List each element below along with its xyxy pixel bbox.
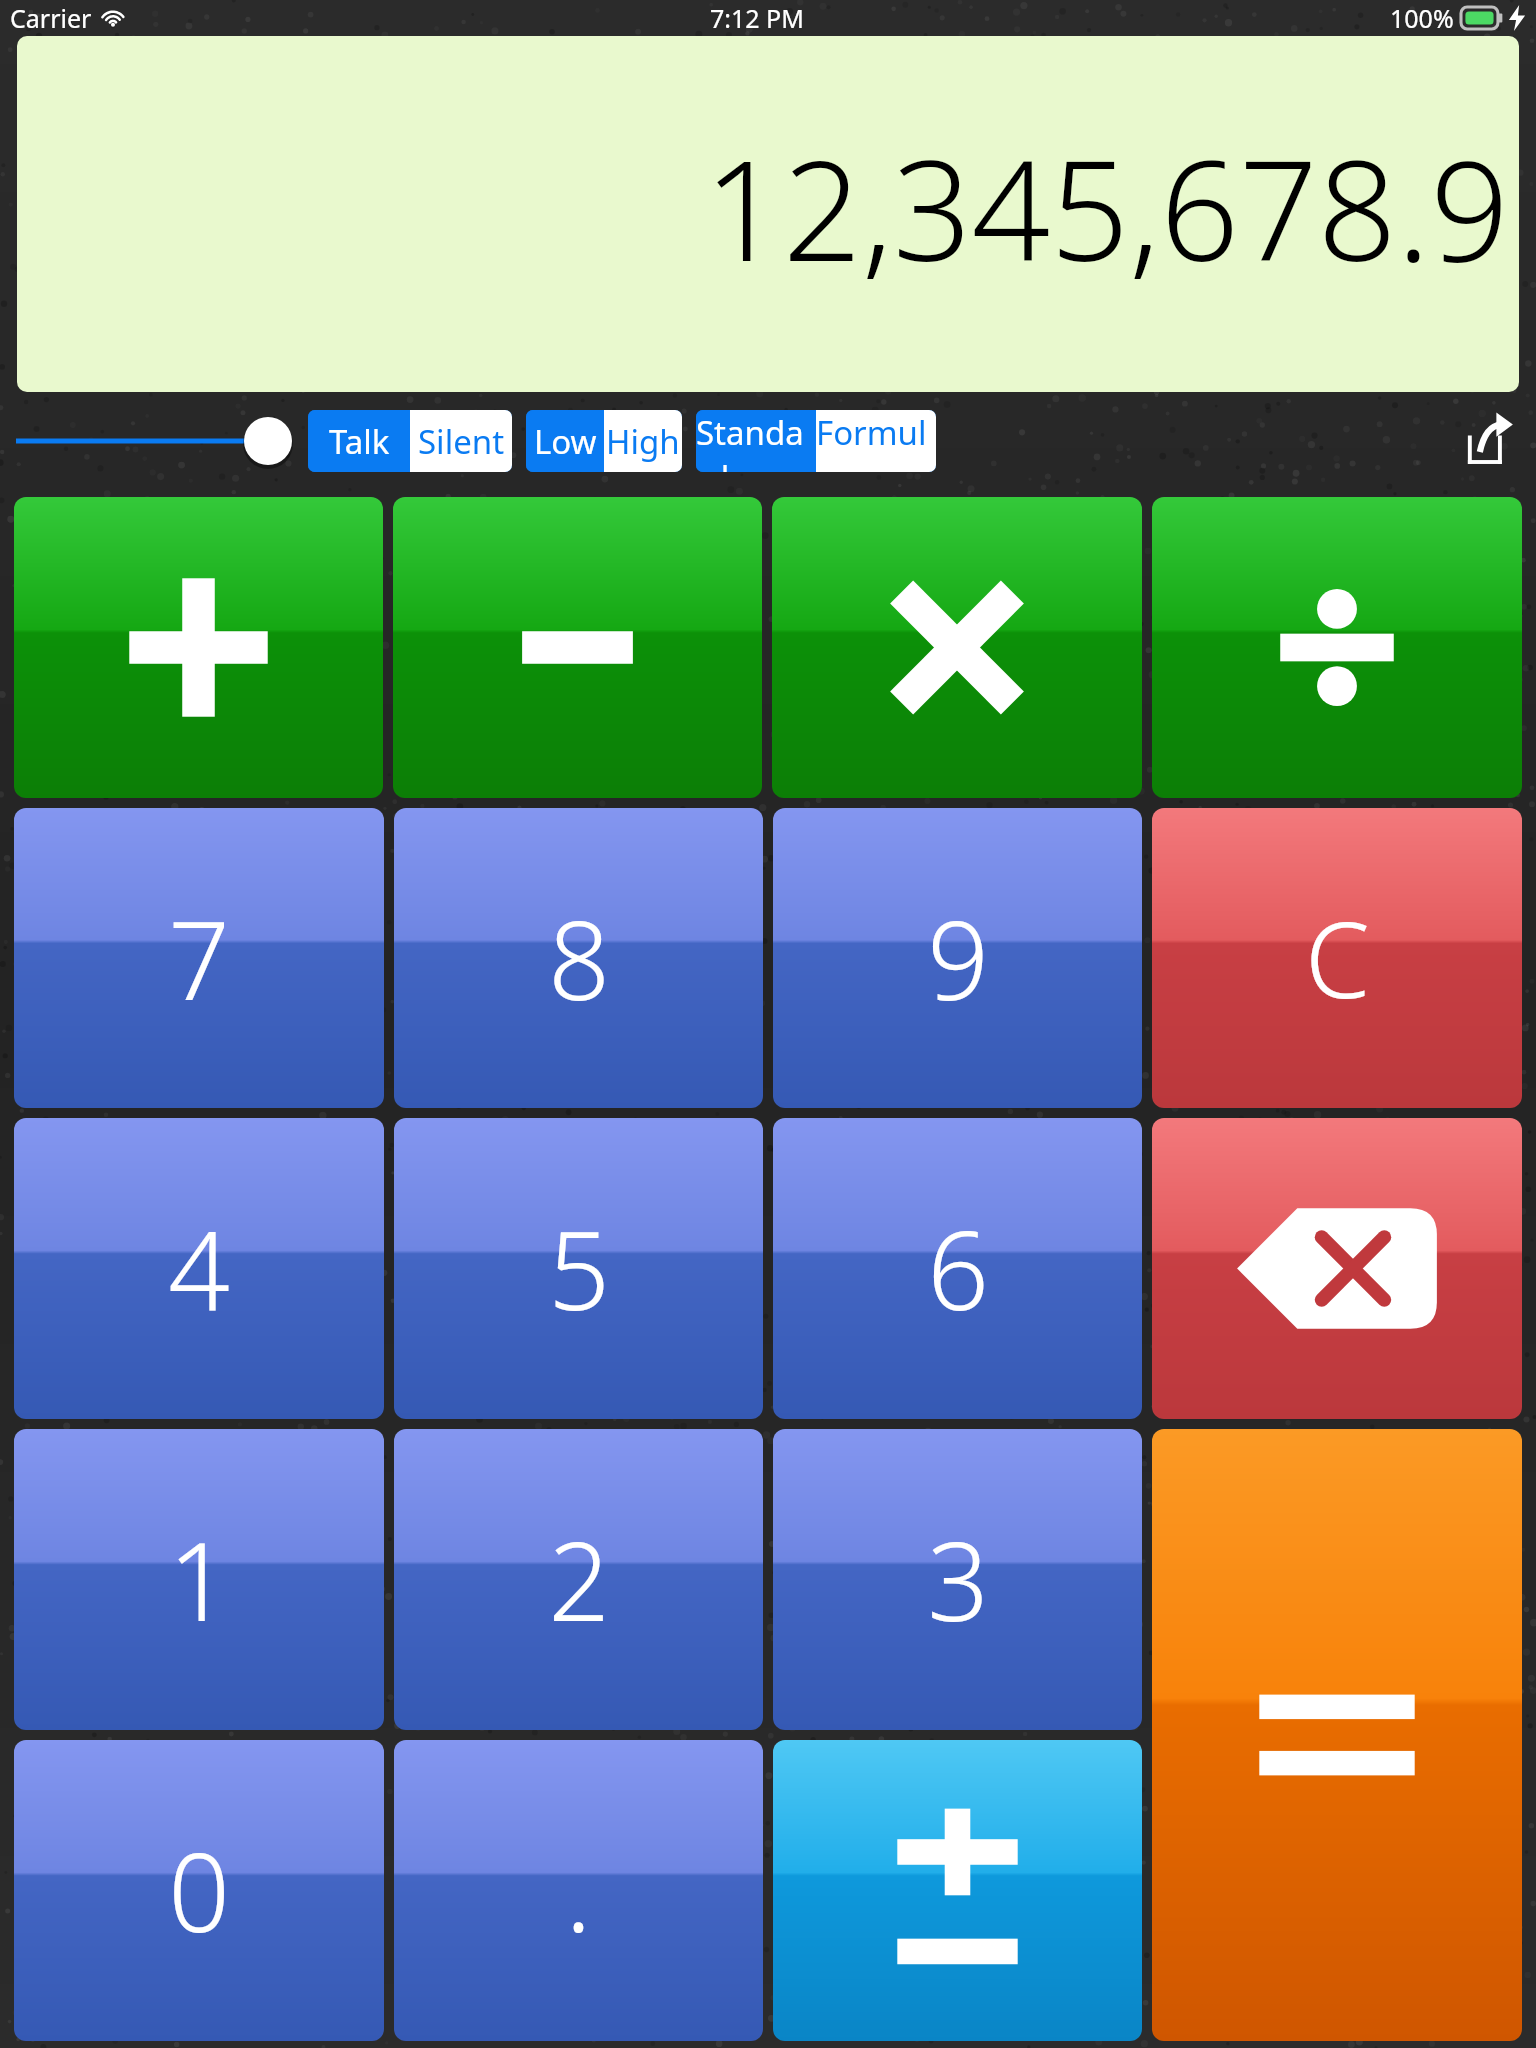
button[interactable]: 5 (394, 1118, 763, 1419)
button[interactable]: Multiply (772, 497, 1142, 798)
button[interactable]: 6 (773, 1118, 1142, 1419)
button[interactable]: High (604, 410, 682, 472)
button[interactable]: Talk (308, 410, 410, 472)
button[interactable]: Low (526, 410, 604, 472)
button[interactable]: Share (1458, 410, 1520, 472)
button[interactable]: 2 (394, 1429, 763, 1730)
button[interactable]: 9 (773, 808, 1142, 1108)
button[interactable]: 0 (14, 1740, 384, 2041)
staticText: 7 (168, 885, 230, 1032)
staticText: 5 (548, 1195, 610, 1342)
button[interactable]: Standard (696, 410, 816, 472)
button[interactable]: Clear (1152, 808, 1522, 1108)
staticText: 100% (1390, 1, 1454, 35)
staticText: 3 (927, 1506, 989, 1653)
staticText: 7:12 PM (710, 1, 804, 35)
button[interactable]: 8 (394, 808, 763, 1108)
staticText: Formula (816, 410, 936, 472)
staticText: 1 (168, 1506, 230, 1653)
staticText: . (565, 1817, 592, 1964)
staticText: High (606, 419, 680, 464)
button[interactable]: 4 (14, 1118, 384, 1419)
button[interactable]: Plus minus (773, 1740, 1142, 2041)
button[interactable]: 12,345,678.9 (17, 36, 1519, 392)
button[interactable]: Formula (816, 410, 936, 472)
button[interactable]: Equals (1152, 1429, 1522, 2041)
button[interactable]: Silent (410, 410, 512, 472)
staticText: 2 (548, 1506, 610, 1653)
button[interactable]: Backspace (1152, 1118, 1522, 1419)
staticText: 8 (548, 885, 610, 1032)
staticText: Talk (329, 419, 390, 464)
staticText: 4 (168, 1195, 230, 1342)
staticText: Silent (418, 419, 505, 464)
button[interactable]: . (394, 1740, 763, 2041)
staticText: Carrier (10, 1, 92, 35)
staticText: Standard (696, 410, 816, 472)
button[interactable]: Plus (14, 497, 383, 798)
staticText: 6 (927, 1195, 989, 1342)
staticText: 9 (927, 885, 989, 1032)
staticText: 12,345,678.9 (704, 113, 1509, 301)
button[interactable]: 7 (14, 808, 384, 1108)
staticText: Low (534, 419, 597, 464)
button[interactable] (16, 411, 296, 471)
button[interactable]: 3 (773, 1429, 1142, 1730)
staticText: C (1305, 887, 1370, 1029)
button[interactable]: Minus (393, 497, 762, 798)
staticText: 0 (168, 1817, 230, 1964)
button[interactable]: Divide (1152, 497, 1522, 798)
button[interactable]: 1 (14, 1429, 384, 1730)
